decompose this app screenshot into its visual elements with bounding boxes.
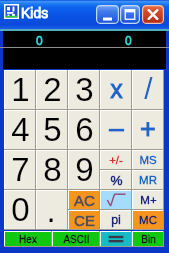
button[interactable]: /: [132, 70, 164, 110]
staticText: 0: [11, 191, 30, 228]
button[interactable]: AC: [68, 190, 100, 210]
button[interactable]: .: [36, 190, 68, 230]
button[interactable]: x: [100, 70, 132, 110]
staticText: Kids: [21, 5, 49, 21]
staticText: .: [46, 192, 56, 229]
button[interactable]: 8: [36, 150, 68, 190]
button[interactable]: MC: [132, 210, 164, 230]
button[interactable]: MS: [132, 150, 164, 170]
button[interactable]: 6: [68, 110, 100, 150]
button[interactable]: 2: [36, 70, 68, 110]
staticText: 0: [125, 34, 132, 47]
staticText: 8: [43, 151, 62, 188]
staticText: CE: [74, 212, 95, 229]
button[interactable]: 3: [68, 70, 100, 110]
staticText: /: [144, 72, 153, 106]
staticText: 1: [11, 71, 30, 108]
button[interactable]: 9: [68, 150, 100, 190]
staticText: Hex: [19, 234, 37, 245]
staticText: 2: [43, 71, 62, 108]
staticText: ASCII: [63, 234, 90, 245]
staticText: MR: [139, 174, 157, 187]
staticText: MC: [139, 214, 157, 227]
staticText: 0: [36, 34, 43, 47]
button[interactable]: Maximize: [120, 5, 140, 24]
staticText: +: [140, 114, 156, 144]
staticText: 7: [11, 151, 30, 188]
staticText: MS: [139, 154, 157, 167]
staticText: 9: [75, 151, 94, 188]
button[interactable]: Minimize: [96, 5, 119, 24]
button[interactable]: Square root: [100, 190, 132, 210]
staticText: 3: [75, 71, 94, 108]
button[interactable]: 4: [4, 110, 36, 150]
button[interactable]: Equals: [100, 231, 132, 247]
staticText: 5: [43, 111, 62, 148]
button[interactable]: 0: [4, 190, 36, 230]
staticText: Bin: [141, 234, 156, 245]
button[interactable]: 1: [4, 70, 36, 110]
button[interactable]: %: [100, 170, 132, 190]
staticText: 6: [75, 111, 94, 148]
button[interactable]: ASCII: [52, 231, 100, 247]
staticText: pi: [111, 213, 121, 227]
button[interactable]: CE: [68, 210, 100, 230]
button[interactable]: +/-: [100, 150, 132, 170]
staticText: –: [109, 113, 124, 142]
button[interactable]: Hex: [4, 231, 52, 247]
staticText: %: [110, 173, 123, 188]
button[interactable]: M+: [132, 190, 164, 210]
button[interactable]: 5: [36, 110, 68, 150]
button[interactable]: MR: [132, 170, 164, 190]
staticText: AC: [74, 192, 95, 209]
staticText: M+: [140, 194, 157, 207]
button[interactable]: 7: [4, 150, 36, 190]
button[interactable]: –: [100, 110, 132, 150]
button[interactable]: +: [132, 110, 164, 150]
staticText: x: [110, 75, 123, 103]
staticText: 4: [11, 111, 30, 148]
staticText: +/-: [109, 154, 123, 167]
button[interactable]: Close: [142, 5, 164, 24]
button[interactable]: pi: [100, 210, 132, 230]
button[interactable]: Bin: [132, 231, 164, 247]
